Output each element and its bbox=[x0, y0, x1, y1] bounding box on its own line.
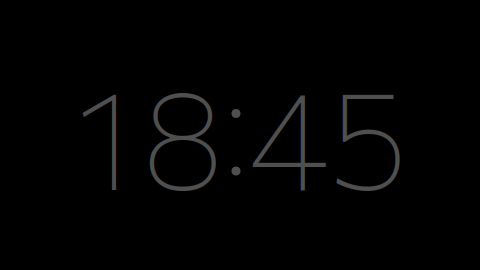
staticText: 5 bbox=[329, 50, 407, 218]
staticText: 8 bbox=[141, 50, 224, 218]
staticText: 1 bbox=[77, 50, 133, 218]
staticText: 4 bbox=[248, 50, 329, 218]
button[interactable]: 18:45 bbox=[0, 0, 480, 270]
